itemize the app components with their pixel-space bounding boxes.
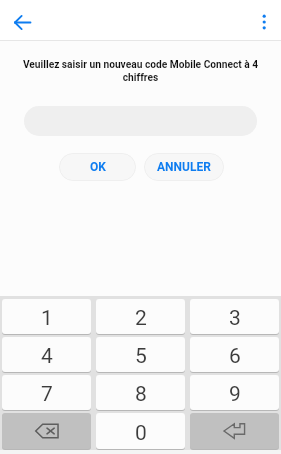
- button[interactable]: 7: [2, 375, 91, 410]
- button[interactable]: ANNULER: [144, 153, 224, 181]
- staticText: 1: [41, 306, 53, 331]
- staticText: 3: [229, 306, 241, 331]
- staticText: Veuillez saisir un nouveau code Mobile C…: [19, 59, 262, 83]
- button[interactable]: OK: [59, 153, 136, 181]
- staticText: 0: [135, 421, 147, 446]
- staticText: 4: [41, 344, 53, 369]
- staticText: ANNULER: [157, 160, 211, 174]
- staticText: 5: [135, 344, 147, 369]
- button[interactable]: 9: [190, 375, 279, 410]
- button[interactable]: Back: [9, 9, 35, 35]
- staticText: 6: [229, 344, 241, 369]
- button[interactable]: 1: [2, 299, 91, 334]
- button[interactable]: Backspace: [2, 413, 91, 449]
- staticText: 7: [41, 382, 53, 407]
- button[interactable]: 0: [96, 413, 185, 449]
- staticText: 9: [229, 382, 241, 407]
- button[interactable]: 5: [96, 337, 185, 372]
- button[interactable]: 4: [2, 337, 91, 372]
- button[interactable]: 6: [190, 337, 279, 372]
- button[interactable]: More options: [250, 9, 276, 35]
- staticText: 8: [135, 382, 147, 407]
- button[interactable]: 8: [96, 375, 185, 410]
- button[interactable]: 3: [190, 299, 279, 334]
- staticText: OK: [90, 160, 106, 174]
- button[interactable]: Enter: [190, 413, 279, 449]
- button[interactable]: 2: [96, 299, 185, 334]
- staticText: 2: [135, 306, 147, 331]
